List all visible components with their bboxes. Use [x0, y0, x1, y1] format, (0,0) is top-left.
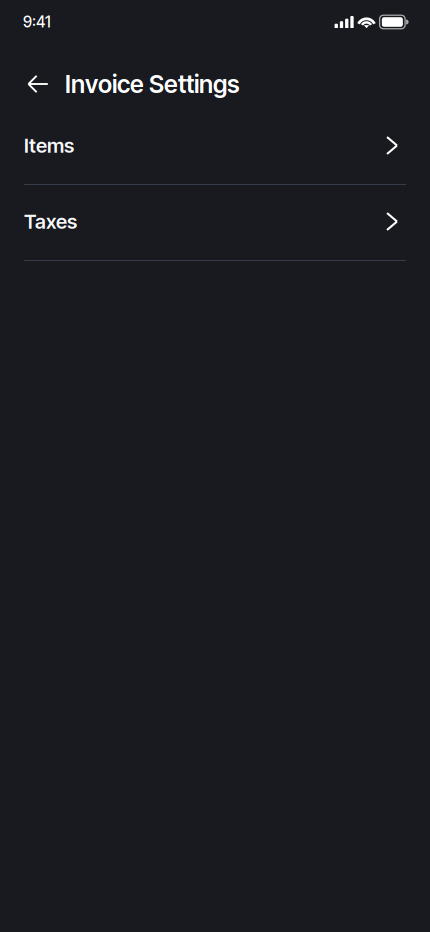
staticText: Taxes	[24, 209, 77, 234]
button[interactable]: Items	[0, 116, 430, 185]
button[interactable]: Back	[22, 64, 55, 104]
staticText: 9:41	[23, 13, 51, 31]
button[interactable]: Taxes	[0, 185, 430, 261]
staticText: Invoice Settings	[65, 69, 240, 99]
staticText: Items	[24, 133, 74, 158]
